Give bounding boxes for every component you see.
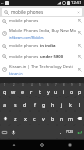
other: Insert suggestion (78, 19, 82, 23)
other: Insert suggestion (78, 44, 82, 48)
button[interactable]: z (10, 111, 20, 125)
staticText: z (14, 115, 17, 122)
other: Insert suggestion (78, 68, 82, 72)
button[interactable]: 1 (0, 83, 9, 97)
staticText: 2 (13, 83, 15, 87)
staticText: mobile phones (11, 9, 44, 15)
staticText: in india (40, 43, 56, 49)
button[interactable]: h (48, 97, 57, 111)
button[interactable]: f (30, 97, 39, 111)
button[interactable]: g (39, 97, 48, 111)
staticText: 9 (71, 83, 73, 87)
button[interactable]: v (39, 111, 48, 125)
staticText: i (63, 88, 65, 95)
staticText: mobile phones (9, 18, 39, 24)
staticText: g (42, 101, 46, 108)
staticText: q (3, 88, 7, 95)
button[interactable]: a (0, 97, 10, 111)
staticText: f (34, 101, 36, 108)
button[interactable]: 5 (36, 83, 44, 97)
staticText: kissan.in (9, 71, 23, 75)
button[interactable]: 7 (52, 83, 60, 97)
other: Insert suggestion (78, 55, 82, 59)
button[interactable]: Search (74, 125, 84, 139)
staticText: 0 (79, 83, 81, 87)
button[interactable]: mobile phones (0, 17, 84, 25)
button[interactable]: l (75, 97, 84, 111)
staticText: 8 (63, 83, 65, 87)
staticText: m (68, 115, 74, 122)
staticText: r (30, 88, 33, 95)
button[interactable]: mobile phones (0, 41, 84, 51)
staticText: 12:51 (71, 0, 82, 6)
staticText: c (33, 115, 36, 122)
button[interactable]: 8 (60, 83, 68, 97)
button[interactable]: j (57, 97, 66, 111)
button[interactable]: Recent apps (56, 140, 84, 150)
staticText: o (70, 88, 74, 95)
staticText: a (3, 101, 7, 108)
button[interactable]: 3 (18, 83, 27, 97)
staticText: k (69, 101, 72, 108)
button[interactable]: ?123 (65, 125, 74, 139)
button[interactable]: 2 (9, 83, 18, 97)
staticText: 1 (4, 83, 6, 87)
staticText: •• (1, 1, 4, 6)
staticText: Mobile Phones India, Buy New Mo (9, 28, 76, 34)
button[interactable]: Backspace (75, 111, 84, 125)
button[interactable]: n (57, 111, 66, 125)
staticText: 3 (22, 83, 24, 87)
button[interactable]: Mobile Phones India, Buy New Mo (0, 25, 84, 41)
staticText: v (42, 115, 45, 122)
staticText: t (39, 88, 41, 95)
staticText: ?123 (66, 130, 73, 134)
staticText: x (24, 115, 27, 122)
button[interactable]: c (30, 111, 39, 125)
staticText: y (47, 88, 50, 95)
button[interactable]: mobile phones (0, 51, 84, 62)
button[interactable]: m (66, 111, 75, 125)
button[interactable]: 0 (76, 83, 84, 97)
button[interactable]: 6 (44, 83, 52, 97)
staticText: mobile phones (9, 43, 40, 49)
staticText: l (79, 101, 81, 108)
staticText: s (14, 101, 17, 108)
staticText: d (23, 101, 27, 108)
other: Clear search (77, 11, 80, 14)
button[interactable]: Shift (0, 111, 10, 125)
staticText: w (11, 88, 16, 95)
button[interactable]: Back (0, 140, 28, 150)
staticText: p (78, 88, 82, 95)
staticText: 5 (39, 83, 41, 87)
button[interactable]: 4 (27, 83, 36, 97)
staticText: n (60, 115, 64, 122)
button[interactable]: mobile phones (2, 8, 82, 16)
button[interactable]: x (20, 111, 30, 125)
button[interactable]: k (66, 97, 75, 111)
button[interactable]: s (10, 97, 20, 111)
staticText: infibeam.com/Mobiles (9, 35, 44, 39)
other: Insert suggestion (78, 31, 82, 35)
staticText: j (61, 101, 63, 108)
staticText: 6 (47, 83, 49, 87)
staticText: Kissan.in | The Technology Desti (9, 64, 73, 70)
staticText: h (51, 101, 55, 108)
staticText: 4 (31, 83, 33, 87)
staticText: . (60, 129, 62, 136)
button[interactable]: Switch keyboard (0, 125, 9, 139)
button[interactable]: Home (28, 140, 56, 150)
button[interactable]: Kissan.in | The Technology Desti (0, 62, 84, 77)
staticText: under 5800 (40, 54, 64, 60)
button[interactable]: Voice input (9, 125, 18, 139)
button[interactable]: d (20, 97, 30, 111)
button[interactable]: b (48, 111, 57, 125)
button[interactable]: . (57, 125, 65, 139)
staticText: u (54, 88, 58, 95)
staticText: e (21, 88, 25, 95)
staticText: mobile phones (9, 54, 40, 60)
staticText: b (51, 115, 55, 122)
staticText: 7 (55, 83, 57, 87)
button[interactable]: 9 (68, 83, 76, 97)
